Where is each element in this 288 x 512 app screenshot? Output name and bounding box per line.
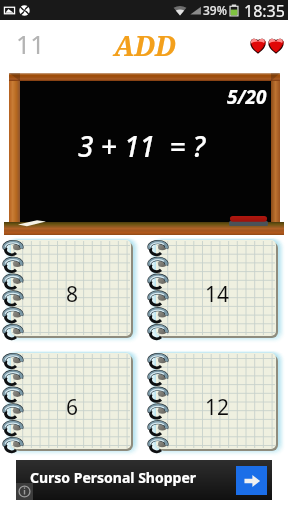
other: Open advertisement <box>236 466 267 495</box>
staticText: 6 <box>66 393 79 422</box>
button[interactable]: Ad info <box>16 483 33 500</box>
button[interactable]: Curso Personal Shopper <box>16 460 272 500</box>
staticText: 12 <box>205 393 230 422</box>
button[interactable]: 8 <box>2 238 135 338</box>
staticText: 5/20 <box>227 84 267 110</box>
button[interactable]: 14 <box>147 238 280 338</box>
staticText: 8 <box>66 280 79 309</box>
staticText: Curso Personal Shopper <box>30 468 197 487</box>
staticText: 14 <box>205 280 230 309</box>
staticText: ADD <box>114 27 176 64</box>
staticText: 11 <box>16 27 45 61</box>
button[interactable]: 12 <box>147 351 280 451</box>
staticText: 3 + 11 = ? <box>78 127 206 165</box>
staticText: 18:35 <box>244 0 285 20</box>
button[interactable]: 6 <box>2 351 135 451</box>
staticText: 39% <box>203 2 227 18</box>
